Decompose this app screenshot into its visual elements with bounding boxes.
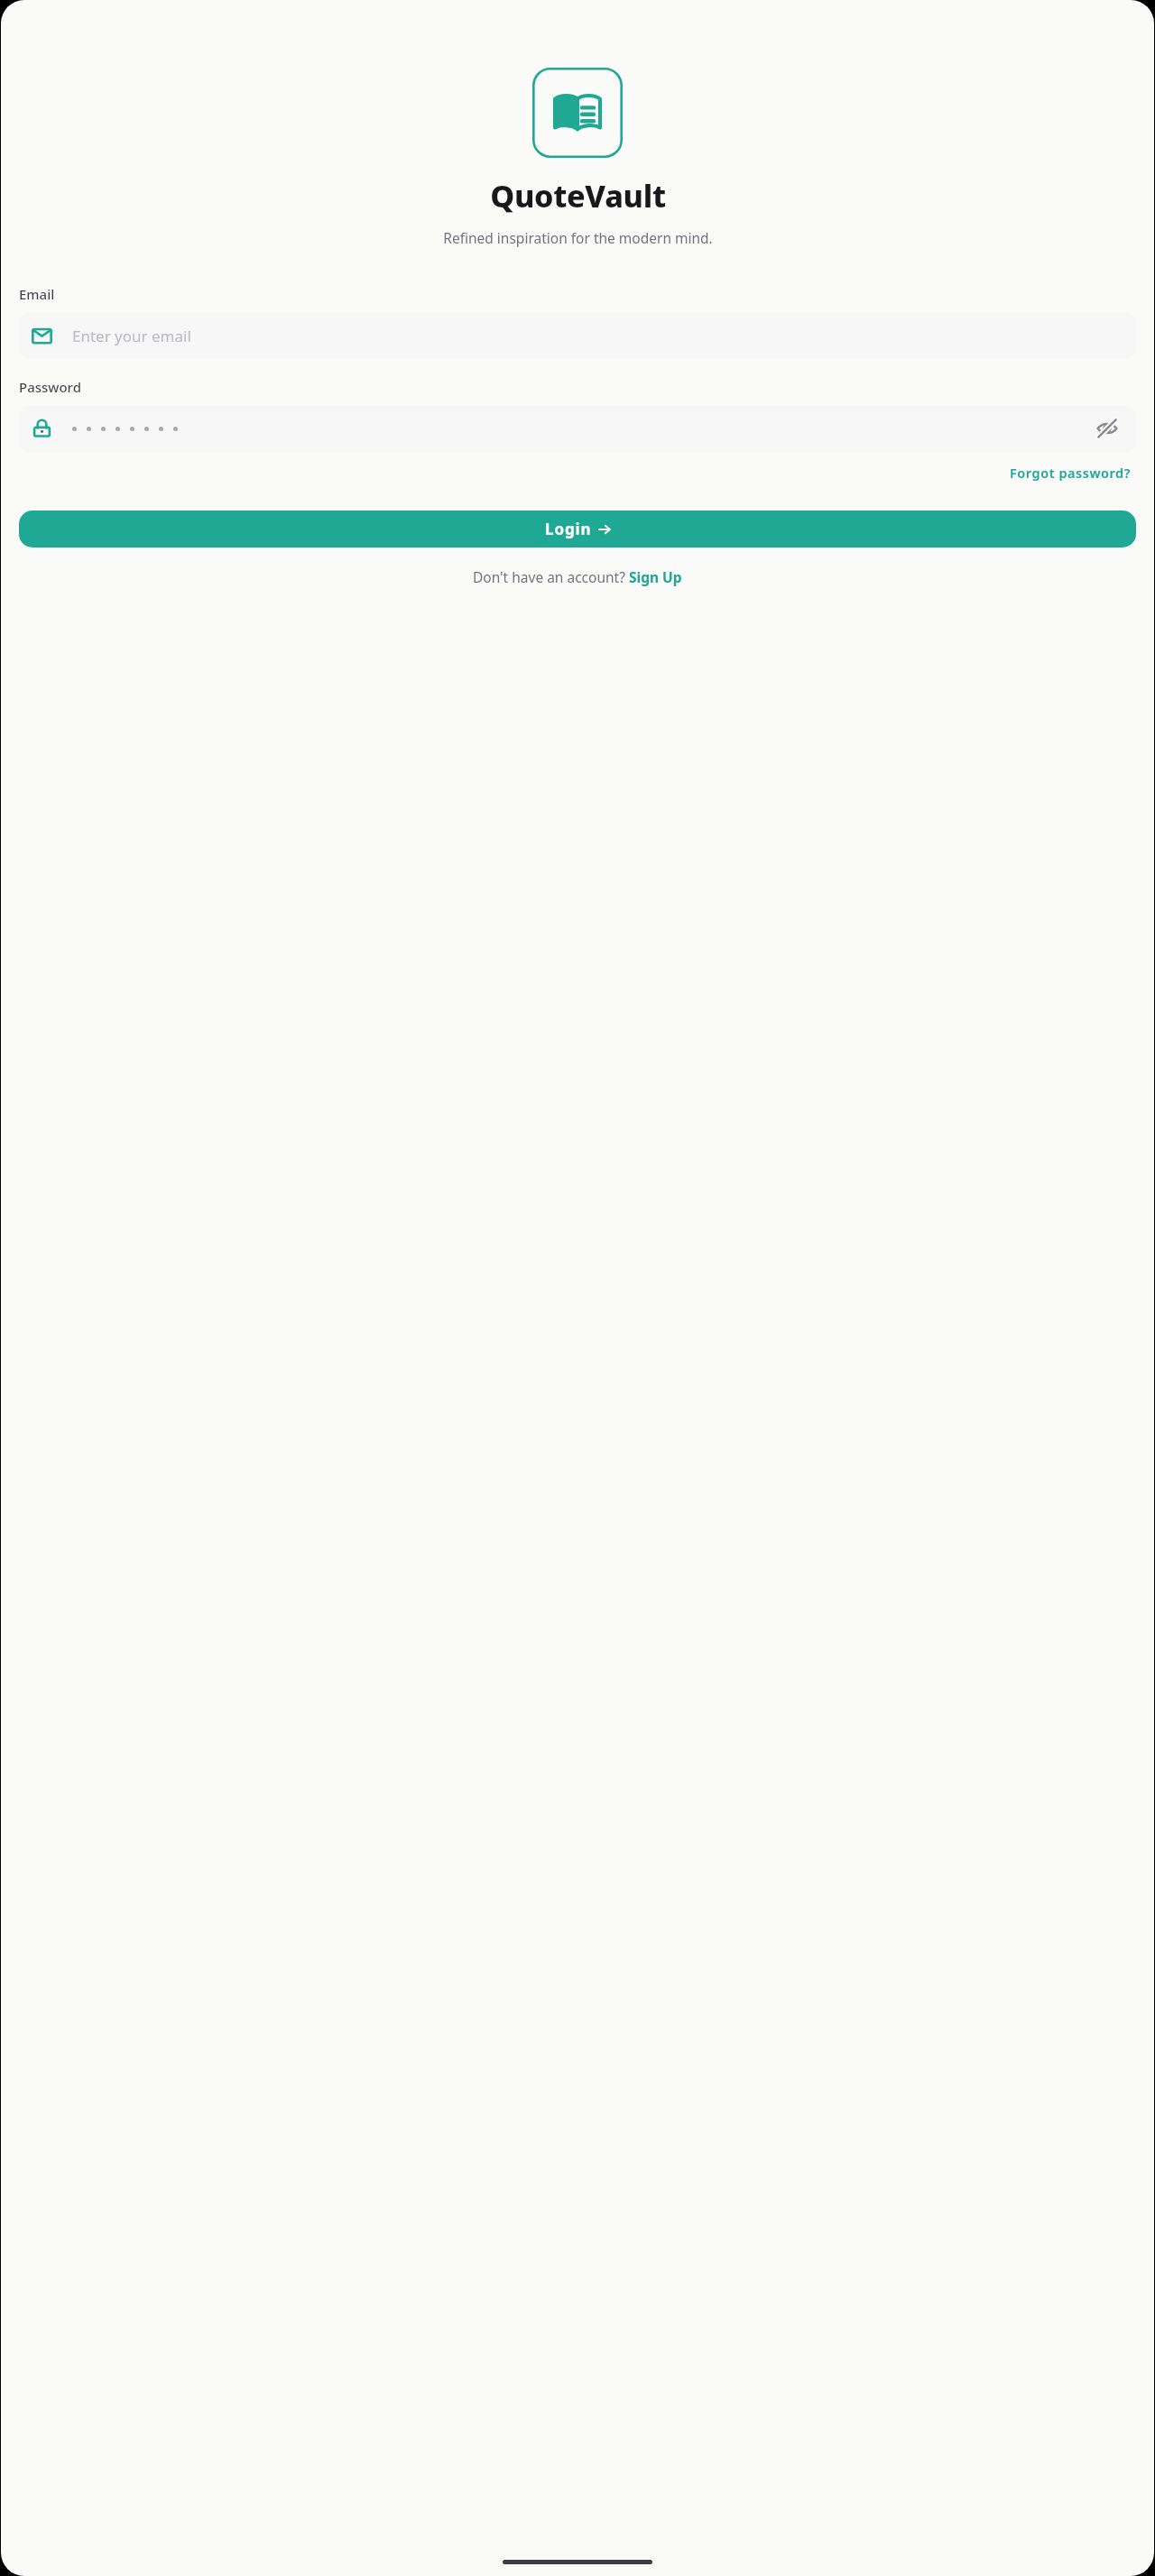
other: QuoteVault logo: [532, 68, 623, 158]
button[interactable]: Password: [19, 405, 1136, 452]
button[interactable]: Sign Up: [629, 567, 682, 586]
staticText: QuoteVault: [490, 175, 666, 216]
button[interactable]: Login: [19, 511, 1136, 547]
staticText: Login: [545, 519, 592, 539]
staticText: Email: [19, 285, 55, 303]
staticText: Don't have an account?: [473, 567, 629, 586]
other: Email: [32, 326, 52, 346]
button[interactable]: Forgot password?: [1004, 460, 1136, 485]
other: Password: [32, 419, 52, 439]
button[interactable]: Show password: [1087, 409, 1127, 448]
staticText: Refined inspiration for the modern mind.: [443, 228, 713, 247]
button[interactable]: Email: [19, 312, 1136, 359]
staticText: Password: [19, 378, 81, 396]
staticText: Sign Up: [629, 567, 682, 586]
staticText: Forgot password?: [1010, 464, 1131, 482]
staticText: Enter your email: [72, 326, 191, 346]
